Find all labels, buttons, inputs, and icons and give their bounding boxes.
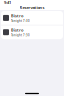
staticText: Bistro	[11, 13, 23, 18]
staticText: 9:41	[4, 0, 11, 5]
staticText: Bistro	[11, 27, 23, 33]
staticText: Reservations	[19, 5, 44, 10]
staticText: Tonight 7:30	[11, 19, 30, 23]
staticText: Tonight 7:30	[11, 34, 30, 37]
